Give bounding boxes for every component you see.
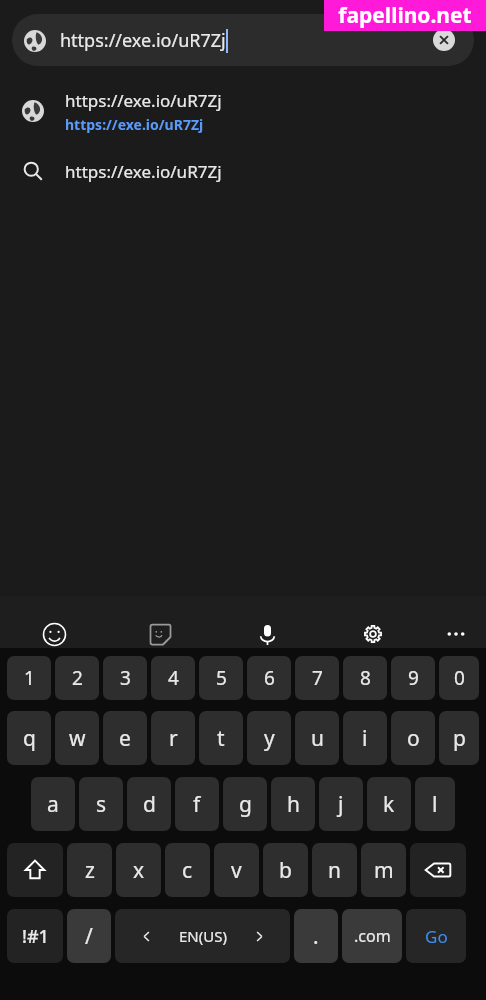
staticText: 7 bbox=[312, 665, 323, 691]
button[interactable]: https://exe.io/uR7Zj bbox=[0, 82, 486, 140]
staticText: a bbox=[47, 790, 59, 819]
staticText: s bbox=[96, 790, 107, 819]
button[interactable]: a bbox=[31, 777, 75, 831]
button[interactable]: Voice input bbox=[245, 612, 289, 656]
button[interactable]: https://exe.io/uR7Zj bbox=[12, 14, 474, 66]
button[interactable]: p bbox=[439, 711, 479, 765]
staticText: 1 bbox=[24, 665, 35, 691]
button[interactable]: j bbox=[319, 777, 363, 831]
staticText: x bbox=[133, 856, 145, 885]
button[interactable]: e bbox=[103, 711, 147, 765]
staticText: f bbox=[193, 790, 201, 819]
staticText: b bbox=[279, 856, 292, 885]
button[interactable]: 2 bbox=[55, 656, 99, 700]
staticText: l bbox=[432, 790, 438, 819]
button[interactable]: 9 bbox=[391, 656, 435, 700]
staticText: https://exe.io/uR7Zj bbox=[65, 160, 222, 183]
staticText: 8 bbox=[360, 665, 371, 691]
staticText: . bbox=[313, 922, 319, 951]
staticText: y bbox=[264, 724, 275, 753]
button[interactable]: w bbox=[55, 711, 99, 765]
button[interactable]: h bbox=[271, 777, 315, 831]
button[interactable]: Go bbox=[406, 909, 466, 963]
button[interactable]: . bbox=[294, 909, 338, 963]
staticText: z bbox=[85, 856, 95, 885]
staticText: t bbox=[217, 724, 225, 753]
button[interactable]: Settings bbox=[351, 612, 395, 656]
staticText: h bbox=[287, 790, 300, 819]
button[interactable]: z bbox=[67, 843, 112, 897]
button[interactable]: s bbox=[79, 777, 123, 831]
staticText: EN(US) bbox=[179, 926, 227, 946]
button[interactable]: 7 bbox=[295, 656, 339, 700]
button[interactable]: b bbox=[263, 843, 308, 897]
staticText: 9 bbox=[408, 665, 419, 691]
staticText: https://exe.io/uR7Zj bbox=[65, 89, 222, 112]
staticText: fapellino.net bbox=[338, 1, 472, 30]
staticText: 3 bbox=[120, 665, 131, 691]
button[interactable]: https://exe.io/uR7Zj bbox=[0, 148, 486, 194]
button[interactable]: g bbox=[223, 777, 267, 831]
button[interactable]: d bbox=[127, 777, 171, 831]
staticText: 4 bbox=[168, 665, 179, 691]
staticText: Go bbox=[425, 925, 448, 948]
button[interactable]: c bbox=[165, 843, 210, 897]
button[interactable]: .com bbox=[342, 909, 402, 963]
button[interactable]: 4 bbox=[151, 656, 195, 700]
button[interactable]: Stickers bbox=[138, 612, 182, 656]
button[interactable]: i bbox=[343, 711, 387, 765]
button[interactable]: u bbox=[295, 711, 339, 765]
staticText: n bbox=[328, 856, 341, 885]
staticText: u bbox=[311, 724, 324, 753]
staticText: https://exe.io/uR7Zj bbox=[65, 115, 204, 134]
staticText: r bbox=[169, 724, 178, 753]
button[interactable]: 0 bbox=[439, 656, 479, 700]
staticText: w bbox=[69, 724, 86, 753]
staticText: i bbox=[362, 724, 368, 753]
button[interactable]: 8 bbox=[343, 656, 387, 700]
staticText: d bbox=[143, 790, 156, 819]
button[interactable]: Clear bbox=[428, 24, 460, 56]
button[interactable]: 5 bbox=[199, 656, 243, 700]
button[interactable]: x bbox=[116, 843, 161, 897]
button[interactable]: m bbox=[361, 843, 406, 897]
staticText: 6 bbox=[264, 665, 275, 691]
button[interactable]: / bbox=[67, 909, 111, 963]
staticText: https://exe.io/uR7Zj bbox=[60, 28, 226, 53]
staticText: 5 bbox=[216, 665, 227, 691]
button[interactable]: !#1 bbox=[7, 909, 63, 963]
button[interactable]: l bbox=[415, 777, 455, 831]
button[interactable]: Shift bbox=[7, 843, 63, 897]
button[interactable]: Backspace bbox=[410, 843, 466, 897]
staticText: m bbox=[374, 856, 394, 885]
button[interactable]: t bbox=[199, 711, 243, 765]
staticText: e bbox=[119, 724, 131, 753]
button[interactable]: o bbox=[391, 711, 435, 765]
staticText: .com bbox=[354, 925, 391, 947]
staticText: q bbox=[23, 724, 36, 753]
button[interactable]: Emoji bbox=[32, 612, 76, 656]
button[interactable]: 1 bbox=[7, 656, 51, 700]
staticText: p bbox=[453, 724, 466, 753]
button[interactable]: EN(US) bbox=[115, 909, 290, 963]
staticText: g bbox=[239, 790, 252, 819]
button[interactable]: 3 bbox=[103, 656, 147, 700]
staticText: c bbox=[182, 856, 193, 885]
button[interactable]: More options bbox=[434, 612, 478, 656]
button[interactable]: r bbox=[151, 711, 195, 765]
button[interactable]: n bbox=[312, 843, 357, 897]
staticText: / bbox=[85, 922, 93, 951]
staticText: o bbox=[407, 724, 420, 753]
staticText: 2 bbox=[72, 665, 83, 691]
staticText: k bbox=[383, 790, 395, 819]
staticText: v bbox=[231, 856, 242, 885]
button[interactable]: 6 bbox=[247, 656, 291, 700]
staticText: j bbox=[338, 790, 344, 819]
staticText: 0 bbox=[454, 665, 465, 691]
button[interactable]: f bbox=[175, 777, 219, 831]
button[interactable]: v bbox=[214, 843, 259, 897]
button[interactable]: q bbox=[7, 711, 51, 765]
staticText: !#1 bbox=[22, 924, 49, 949]
button[interactable]: k bbox=[367, 777, 411, 831]
button[interactable]: y bbox=[247, 711, 291, 765]
